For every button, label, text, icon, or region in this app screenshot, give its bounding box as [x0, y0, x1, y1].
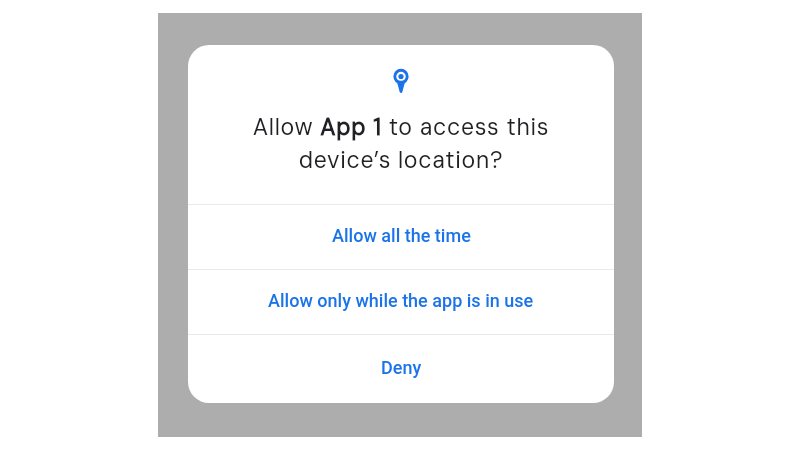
button[interactable]: Deny	[188, 335, 614, 403]
button[interactable]: Allow all the time	[188, 205, 614, 269]
staticText: Allow App 1 to access this device’s loca…	[188, 112, 614, 175]
staticText: Allow all the time	[332, 225, 471, 246]
staticText: Deny	[381, 357, 422, 378]
staticText: Allow only while the app is in use	[268, 290, 534, 311]
button[interactable]: Allow only while the app is in use	[188, 270, 614, 334]
